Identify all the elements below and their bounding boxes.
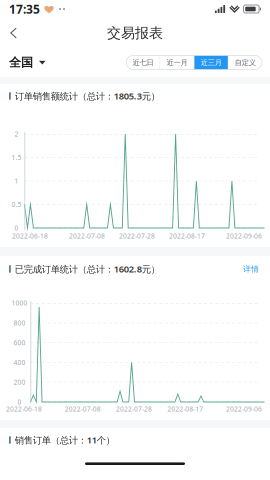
button[interactable]: 近七日 (126, 55, 160, 69)
staticText: 2022-06-18 (6, 404, 42, 414)
staticText: 800 (13, 318, 25, 327)
staticText: 2022-09-06 (226, 231, 262, 241)
staticText: 近七日 (132, 58, 153, 67)
staticText: 400 (13, 358, 25, 367)
staticText: 200 (13, 378, 25, 387)
staticText: 0.5 (11, 200, 21, 209)
staticText: 全国 (9, 55, 33, 70)
button[interactable]: 详情 (243, 263, 259, 275)
staticText: 自定义 (235, 58, 256, 67)
staticText: 1 (14, 176, 18, 186)
staticText: 0 (14, 223, 18, 233)
staticText: 2022-07-28 (119, 231, 155, 241)
staticText: 近三月 (201, 58, 222, 67)
staticText: 2022-09-06 (226, 404, 262, 414)
button[interactable]: 近一月 (160, 55, 194, 69)
button[interactable]: 自定义 (228, 55, 262, 69)
staticText: 2022-07-08 (65, 404, 101, 414)
staticText: 1.5 (11, 153, 21, 162)
staticText: 600 (13, 338, 25, 347)
staticText: 2 (14, 129, 18, 139)
staticText: 17:35 (9, 1, 40, 17)
staticText: 0 (17, 397, 21, 407)
staticText: 已完成订单统计（总计：1602.8元） (15, 263, 160, 275)
button[interactable]: 全国 (0, 48, 45, 77)
staticText: 销售订单（总计：11个） (15, 434, 115, 446)
staticText: 详情 (243, 264, 259, 274)
staticText: 2022-06-18 (12, 231, 48, 241)
staticText: 2022-08-17 (169, 231, 205, 241)
staticText: 2022-08-17 (167, 404, 203, 414)
staticText: 近一月 (167, 58, 188, 67)
button[interactable]: 近三月 (194, 55, 228, 69)
staticText: 2022-07-08 (69, 231, 105, 241)
staticText: 交易报表 (107, 24, 163, 42)
staticText: 1000 (11, 298, 27, 308)
staticText: 订单销售额统计（总计：1805.3元） (15, 90, 160, 102)
button[interactable]: 返回 (0, 18, 29, 48)
staticText: 2022-07-28 (116, 404, 152, 414)
